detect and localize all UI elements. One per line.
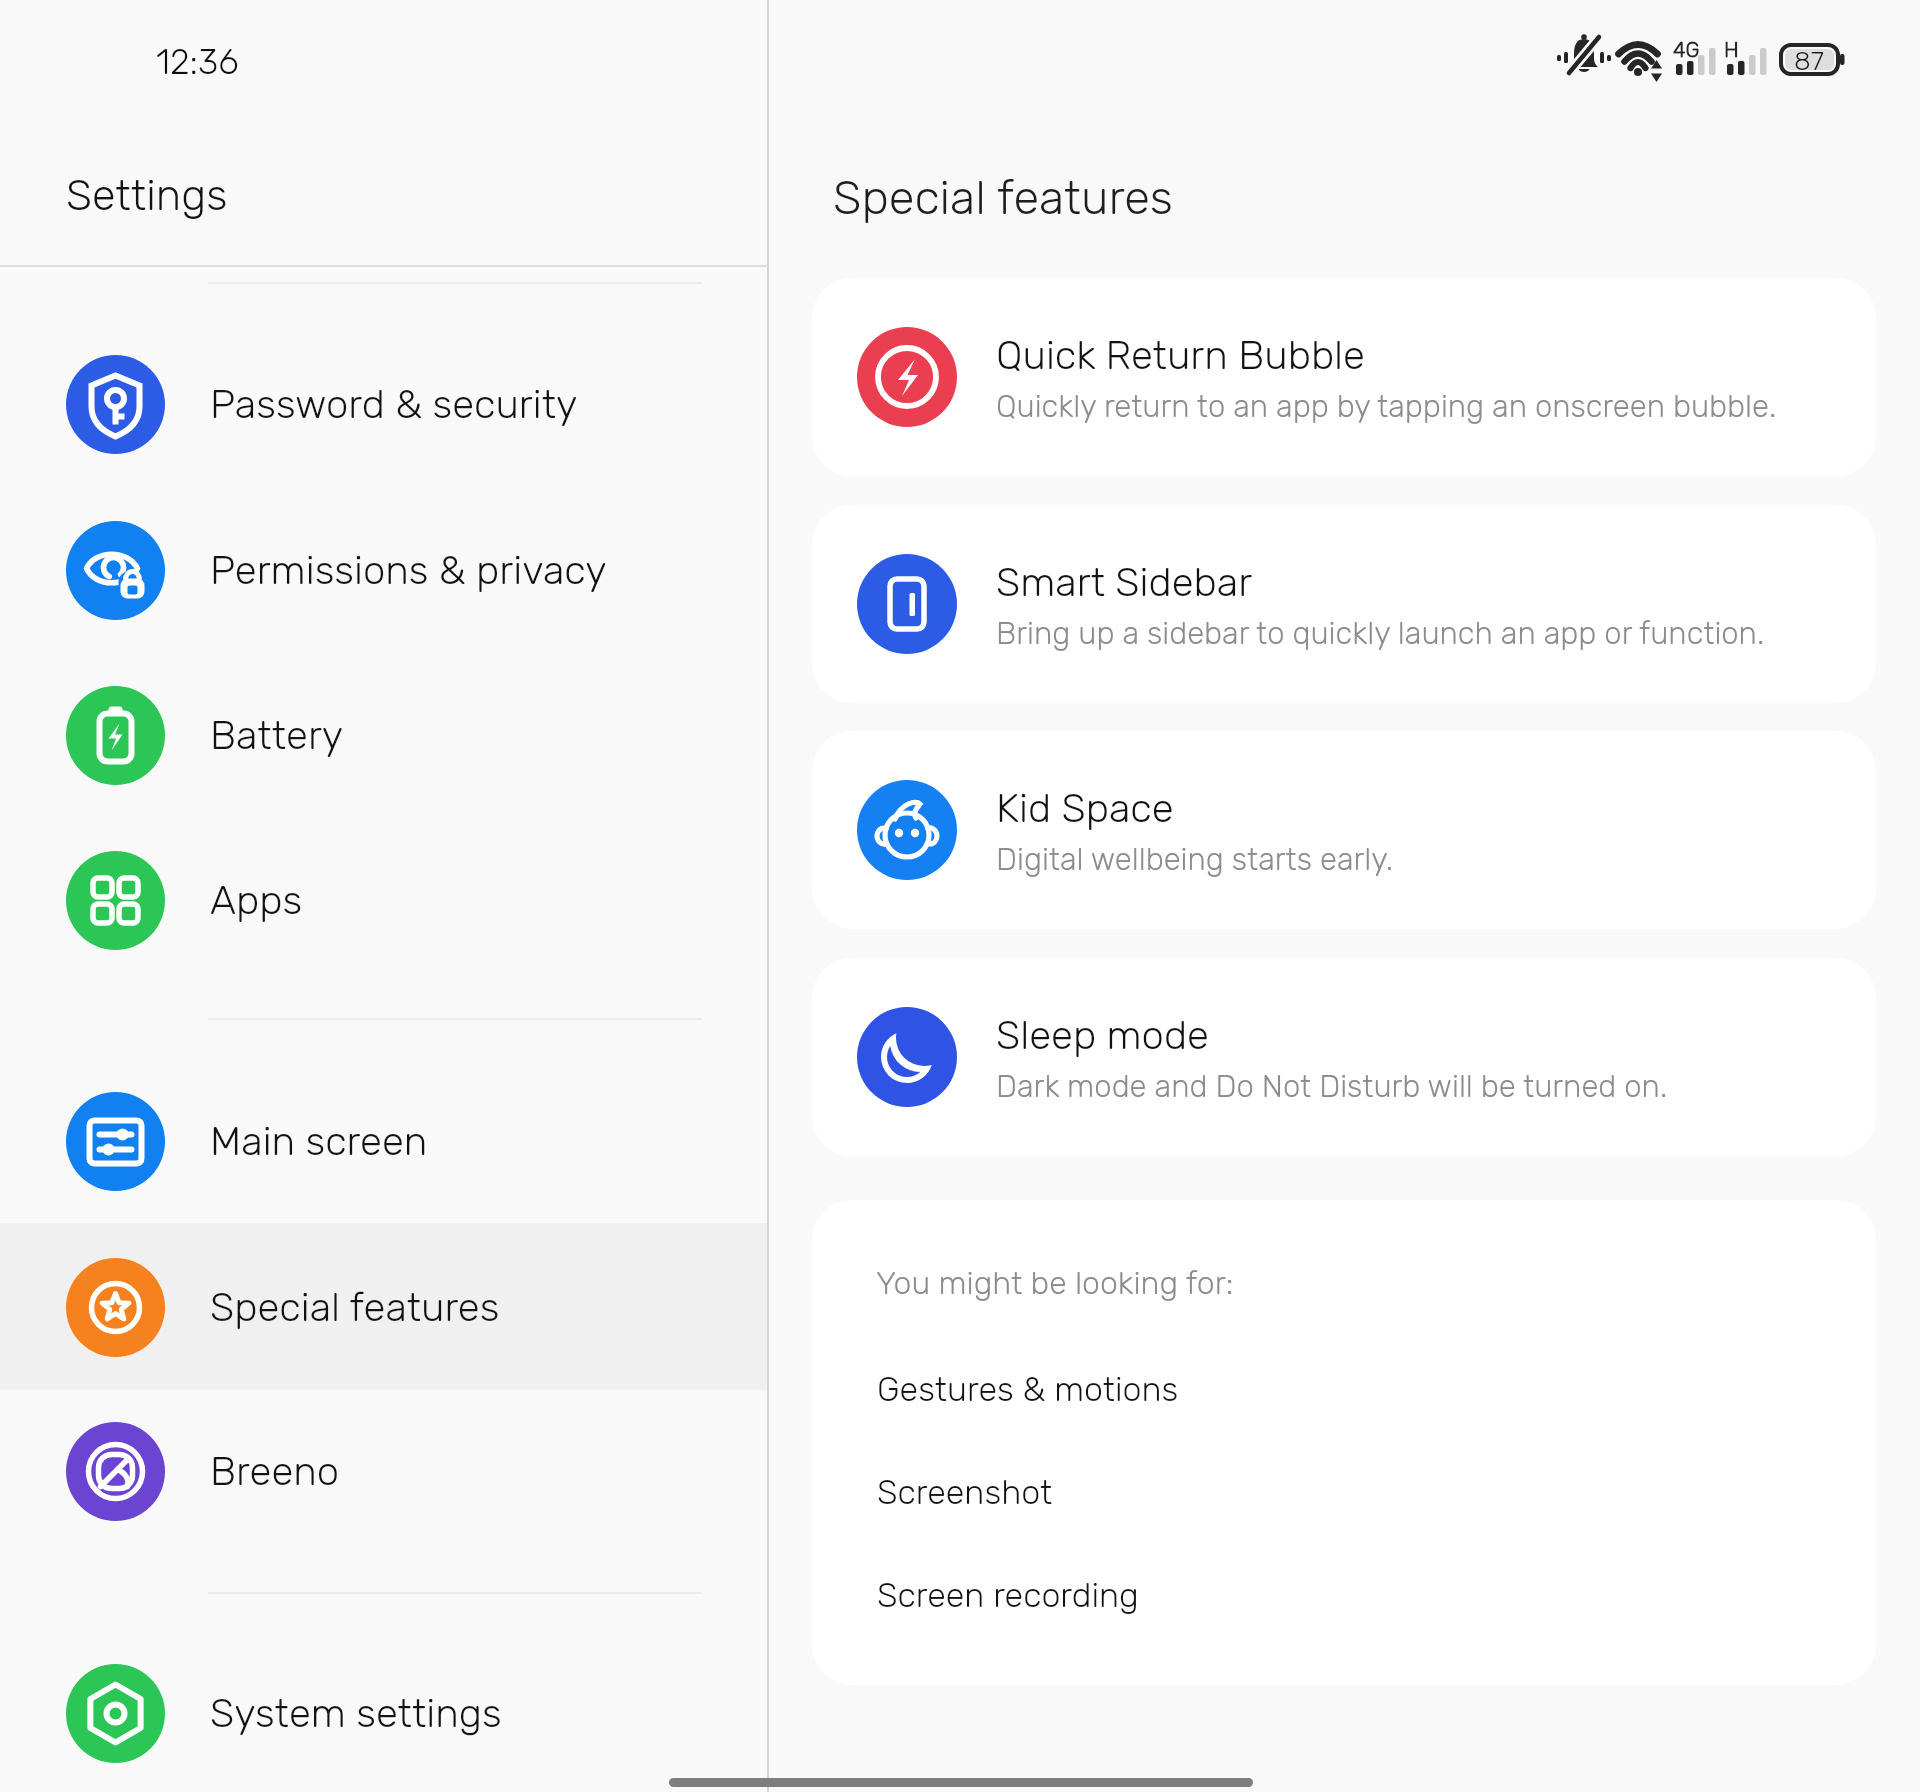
- staticText: H: [1724, 37, 1739, 62]
- button[interactable]: Breeno: [0, 1388, 767, 1555]
- staticText: Password & security: [210, 381, 578, 428]
- staticText: Breeno: [210, 1448, 340, 1495]
- staticText: Kid Space: [996, 785, 1174, 832]
- button[interactable]: Apps: [0, 817, 767, 984]
- staticText: Quick Return Bubble: [996, 332, 1365, 379]
- staticText: Bring up a sidebar to quickly launch an …: [996, 615, 1765, 652]
- staticText: Special features: [833, 170, 1173, 226]
- button[interactable]: Screen recording: [812, 1539, 1876, 1625]
- staticText: Battery: [210, 712, 344, 759]
- staticText: Screenshot: [877, 1472, 1053, 1512]
- staticText: Digital wellbeing starts early.: [996, 841, 1394, 878]
- button[interactable]: System settings: [0, 1630, 767, 1792]
- button[interactable]: Sleep mode: [812, 958, 1876, 1156]
- staticText: System settings: [210, 1690, 502, 1737]
- staticText: 12:36: [156, 41, 239, 82]
- staticText: Quickly return to an app by tapping an o…: [996, 388, 1777, 425]
- button[interactable]: Kid Space: [812, 731, 1876, 929]
- staticText: Smart Sidebar: [996, 559, 1253, 606]
- staticText: Screen recording: [877, 1575, 1139, 1615]
- button[interactable]: Gestures & motions: [812, 1333, 1876, 1419]
- other: Status icons: [1557, 36, 1847, 78]
- staticText: Apps: [210, 877, 303, 924]
- staticText: Permissions & privacy: [210, 547, 607, 594]
- staticText: 87: [1794, 45, 1824, 77]
- staticText: Sleep mode: [996, 1012, 1209, 1059]
- staticText: 4G: [1673, 37, 1700, 62]
- staticText: Gestures & motions: [877, 1369, 1179, 1409]
- button[interactable]: Main screen: [0, 1058, 767, 1225]
- button[interactable]: Special features: [0, 1224, 767, 1391]
- button[interactable]: Password & security: [0, 321, 767, 488]
- staticText: Dark mode and Do Not Disturb will be tur…: [996, 1068, 1668, 1105]
- staticText: Settings: [66, 170, 228, 221]
- button[interactable]: Battery: [0, 652, 767, 819]
- button[interactable]: Quick Return Bubble: [812, 278, 1876, 476]
- staticText: Main screen: [210, 1118, 428, 1165]
- staticText: Special features: [210, 1284, 500, 1331]
- button[interactable]: Smart Sidebar: [812, 505, 1876, 703]
- button[interactable]: Permissions & privacy: [0, 487, 767, 654]
- button[interactable]: Screenshot: [812, 1436, 1876, 1522]
- staticText: You might be looking for:: [876, 1264, 1234, 1302]
